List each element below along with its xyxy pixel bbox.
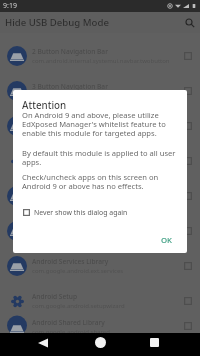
button[interactable]: Android Auto bbox=[0, 143, 200, 178]
button[interactable]: Home bbox=[88, 331, 113, 354]
staticText: Android Services Library bbox=[32, 257, 109, 266]
button[interactable]: Android Gestural Navigation bbox=[0, 213, 200, 248]
staticText: OK bbox=[161, 235, 173, 246]
staticText: com.google.android.marvin.talkback bbox=[32, 127, 136, 135]
staticText: Never show this dialog again bbox=[34, 208, 128, 217]
staticText: 3 Button Navigation Bar bbox=[32, 82, 108, 91]
staticText: Hide USB Debug Mode bbox=[5, 16, 109, 29]
button[interactable]: OK bbox=[154, 231, 180, 250]
staticText: Android Accessibility Suite bbox=[32, 117, 115, 126]
button[interactable]: Never show this dialog again bbox=[21, 204, 130, 220]
staticText: 9:19 bbox=[3, 1, 17, 11]
staticText: Attention bbox=[22, 99, 67, 112]
staticText: 2 Button Navigation Bar bbox=[32, 47, 108, 56]
staticText: Android Easter Egg bbox=[32, 187, 93, 196]
staticText: com.google.android.setupwizard bbox=[32, 302, 125, 310]
button[interactable]: Hide USB Debug Mode bbox=[0, 12, 200, 33]
staticText: On Android 9 and above, please utilize E… bbox=[22, 110, 178, 139]
button[interactable]: Android Setup bbox=[0, 283, 200, 318]
button[interactable]: 3 Button Navigation Bar bbox=[0, 73, 200, 108]
button[interactable]: Android Shared Library bbox=[0, 318, 200, 333]
staticText: Android Shared Library bbox=[32, 318, 105, 327]
button[interactable]: Recent apps bbox=[142, 331, 167, 354]
button[interactable]: Android Services Library bbox=[0, 248, 200, 283]
staticText: com.google.android.ext.services bbox=[32, 267, 124, 275]
button[interactable]: Android Accessibility Suite bbox=[0, 108, 200, 143]
staticText: Check/uncheck apps on this screen on And… bbox=[22, 172, 178, 192]
button[interactable]: Back bbox=[30, 331, 55, 354]
staticText: com.android.internal.systemui.navbar.ges… bbox=[32, 232, 164, 240]
button[interactable]: Search bbox=[179, 12, 200, 33]
staticText: Android Auto bbox=[32, 152, 74, 161]
staticText: By default this module is applied to all… bbox=[22, 148, 178, 168]
button[interactable]: 2 Button Navigation Bar bbox=[0, 38, 200, 73]
button[interactable]: Android Easter Egg bbox=[0, 178, 200, 213]
staticText: com.google.android.shared bbox=[32, 328, 110, 333]
staticText: com.google.android.projection.gearhead bbox=[32, 162, 148, 170]
staticText: Android Setup bbox=[32, 292, 77, 301]
staticText: com.android.internal.systemui.navbar.two… bbox=[32, 57, 170, 65]
